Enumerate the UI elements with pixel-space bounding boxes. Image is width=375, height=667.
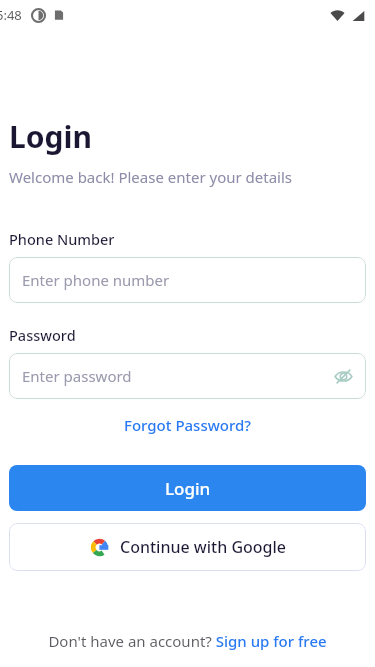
button[interactable]: Forgot Password? bbox=[120, 413, 256, 437]
staticText: Login bbox=[9, 116, 92, 157]
staticText: Password bbox=[9, 325, 76, 345]
staticText: Phone Number bbox=[9, 229, 115, 249]
staticText: Welcome back! Please enter your details bbox=[9, 167, 293, 187]
staticText: Don't have an account? Sign up for free bbox=[48, 631, 327, 651]
button[interactable]: Enter phone number bbox=[9, 257, 366, 303]
button[interactable]: Login bbox=[9, 465, 366, 511]
button[interactable]: Continue with Google bbox=[9, 523, 366, 571]
button[interactable]: Don't have an account? Sign up for free bbox=[44, 629, 331, 653]
staticText: Login bbox=[165, 477, 211, 500]
staticText: 5:48 bbox=[0, 6, 22, 24]
staticText: Forgot Password? bbox=[124, 415, 252, 435]
staticText: Enter phone number bbox=[22, 270, 170, 290]
button[interactable]: Show password bbox=[331, 364, 355, 388]
staticText: Enter password bbox=[22, 366, 132, 386]
staticText: Continue with Google bbox=[120, 536, 286, 558]
button[interactable]: Enter password bbox=[9, 353, 366, 399]
